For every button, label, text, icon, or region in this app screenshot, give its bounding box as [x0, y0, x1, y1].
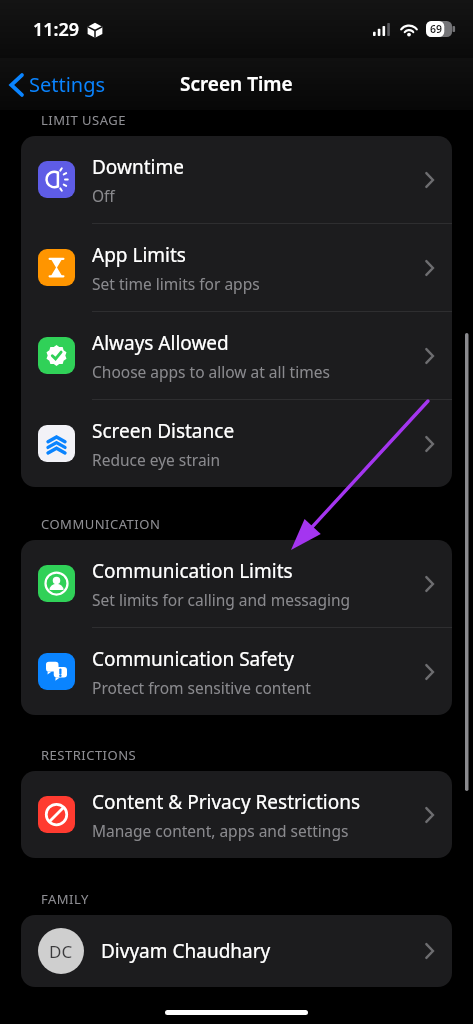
button[interactable]: DC: [21, 915, 452, 987]
staticText: Manage content, apps and settings: [92, 820, 349, 841]
button[interactable]: Downtime: [21, 136, 452, 223]
staticText: 11:29: [33, 17, 80, 42]
staticText: Set time limits for apps: [92, 273, 260, 294]
staticText: Screen Distance: [92, 418, 235, 444]
staticText: Reduce eye strain: [92, 449, 221, 470]
staticText: RESTRICTIONS: [41, 746, 137, 764]
button[interactable]: App Limits: [21, 224, 452, 311]
button[interactable]: Settings: [0, 63, 120, 106]
button[interactable]: Screen Distance: [21, 400, 452, 487]
staticText: Communication Safety: [92, 646, 295, 672]
staticText: FAMILY: [41, 890, 89, 908]
staticText: DC: [49, 940, 73, 963]
staticText: Always Allowed: [92, 330, 229, 356]
staticText: Communication Limits: [92, 558, 293, 584]
staticText: Set limits for calling and messaging: [92, 589, 351, 610]
staticText: App Limits: [92, 242, 186, 268]
button[interactable]: Always Allowed: [21, 312, 452, 399]
staticText: 69: [430, 22, 443, 36]
other: Annotation arrow: [0, 0, 473, 1024]
button[interactable]: Communication Safety: [21, 628, 452, 715]
staticText: Content & Privacy Restrictions: [92, 789, 360, 815]
staticText: Downtime: [92, 154, 184, 180]
staticText: Divyam Chaudhary: [101, 938, 425, 964]
button[interactable]: Content & Privacy Restrictions: [21, 771, 452, 858]
staticText: Off: [92, 185, 115, 206]
button[interactable]: Communication Limits: [21, 540, 452, 627]
staticText: LIMIT USAGE: [41, 111, 126, 129]
staticText: Screen Time: [180, 71, 293, 97]
staticText: COMMUNICATION: [41, 515, 161, 533]
staticText: Protect from sensitive content: [92, 677, 311, 698]
staticText: Settings: [29, 71, 106, 98]
staticText: Choose apps to allow at all times: [92, 361, 330, 382]
